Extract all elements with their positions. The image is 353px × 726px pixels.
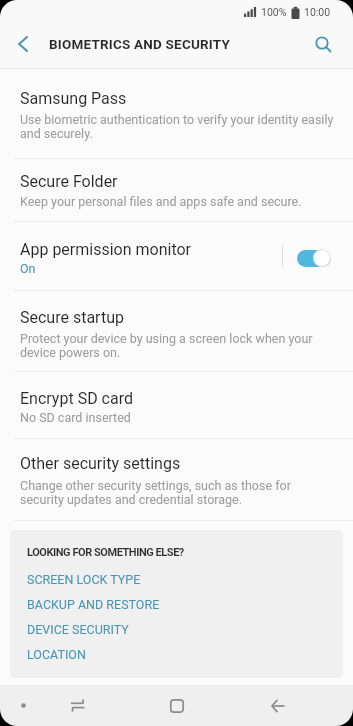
staticText: Samsung Pass [20,89,127,108]
button[interactable] [262,690,294,722]
button[interactable] [62,690,94,722]
staticText: Encrypt SD card [20,389,133,408]
staticText: BIOMETRICS AND SECURITY [49,36,231,52]
button[interactable]: Secure startup [0,291,353,371]
staticText: App permission monitor [20,240,192,259]
button[interactable]: Encrypt SD card [0,372,353,438]
button[interactable]: DEVICE SECURITY [27,617,326,642]
staticText: No SD card inserted [20,410,131,425]
button[interactable]: LOCATION [27,642,326,667]
staticText: 100% [261,6,287,18]
button[interactable] [8,29,38,59]
staticText: Change other security settings, such as … [20,478,291,507]
button[interactable] [161,690,193,722]
staticText: Protect your device by using a screen lo… [20,331,313,360]
staticText: Secure startup [20,308,124,327]
staticText: Other security settings [20,454,181,473]
staticText: LOOKING FOR SOMETHING ELSE? [27,546,184,559]
staticText: 10:00 [304,6,331,18]
button[interactable] [308,29,338,59]
staticText: BACKUP AND RESTORE [27,597,160,612]
button[interactable]: BACKUP AND RESTORE [27,592,326,617]
button[interactable]: SCREEN LOCK TYPE [27,567,326,592]
button[interactable]: Secure Folder [0,159,353,221]
staticText: LOCATION [27,647,86,662]
staticText: Use biometric authentication to verify y… [20,112,333,141]
button[interactable]: Samsung Pass [0,69,353,158]
staticText: Keep your personal files and apps safe a… [20,194,302,209]
button[interactable]: App permission monitor [0,222,353,290]
staticText: SCREEN LOCK TYPE [27,572,141,587]
staticText: Secure Folder [20,172,118,191]
staticText: DEVICE SECURITY [27,622,129,637]
staticText: On [20,261,36,276]
button[interactable]: Other security settings [0,439,353,520]
